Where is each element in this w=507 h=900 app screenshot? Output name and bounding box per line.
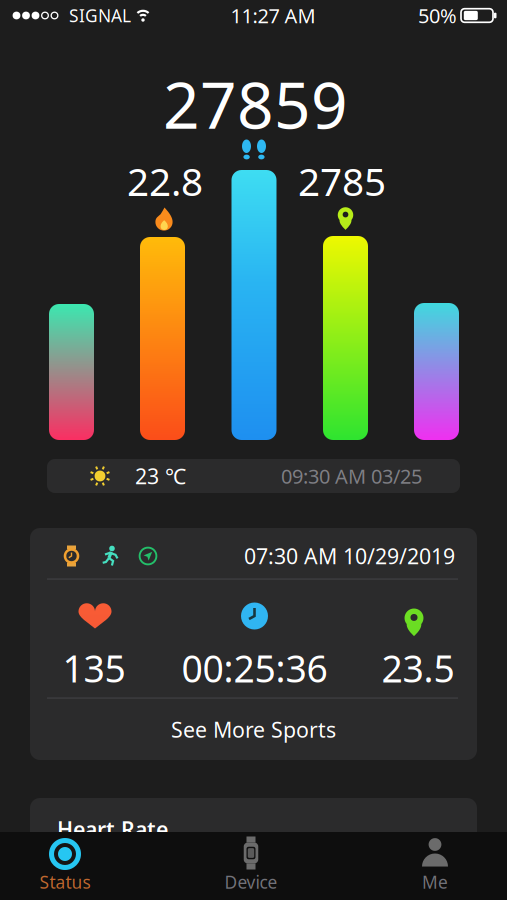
staticText: SIGNAL bbox=[69, 4, 131, 27]
staticText: Heart Rate bbox=[57, 815, 168, 843]
button[interactable]: See More Sports bbox=[30, 699, 477, 760]
staticText: 23 ℃ bbox=[135, 462, 186, 490]
button[interactable]: 23 ℃ bbox=[0, 0, 507, 900]
staticText: 00:25:36 bbox=[181, 643, 327, 693]
button[interactable]: Me bbox=[375, 833, 495, 899]
staticText: 135 bbox=[62, 643, 125, 693]
button[interactable]: Device bbox=[191, 833, 311, 899]
staticText: 11:27 AM bbox=[230, 2, 315, 29]
staticText: 07:30 AM 10/29/2019 bbox=[244, 542, 455, 570]
staticText: 27859 bbox=[163, 61, 348, 146]
staticText: See More Sports bbox=[171, 715, 336, 744]
staticText: 23.5 bbox=[381, 643, 454, 693]
staticText: Me bbox=[422, 870, 448, 893]
staticText: 2785 bbox=[298, 155, 386, 207]
staticText: 50% bbox=[418, 2, 457, 29]
button[interactable]: Status bbox=[5, 833, 125, 899]
staticText: 09:30 AM 03/25 bbox=[281, 463, 422, 489]
staticText: Status bbox=[39, 870, 90, 893]
staticText: 22.8 bbox=[127, 155, 203, 207]
staticText: Device bbox=[224, 870, 277, 893]
